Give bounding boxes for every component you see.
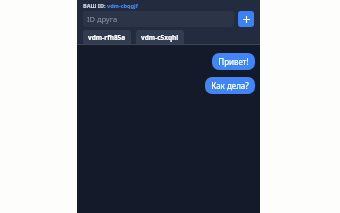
staticText: vdm-rfh85a <box>88 33 126 42</box>
staticText: vdm-c5xqhi <box>141 33 179 42</box>
staticText: ВАШ ID: <box>83 2 107 9</box>
staticText: Как дела? <box>211 80 249 91</box>
button[interactable]: Добавить друга <box>238 11 254 27</box>
button[interactable]: vdm-c5xqhi <box>136 30 184 45</box>
button[interactable]: Привет! <box>212 53 255 70</box>
button[interactable]: vdm-rfh85a <box>83 30 131 45</box>
staticText: ID друга <box>87 14 118 24</box>
staticText: Привет! <box>218 56 249 67</box>
button[interactable]: ID друга <box>83 11 234 27</box>
button[interactable]: vdm-cbqgjf <box>107 2 138 9</box>
button[interactable]: Как дела? <box>205 77 255 94</box>
